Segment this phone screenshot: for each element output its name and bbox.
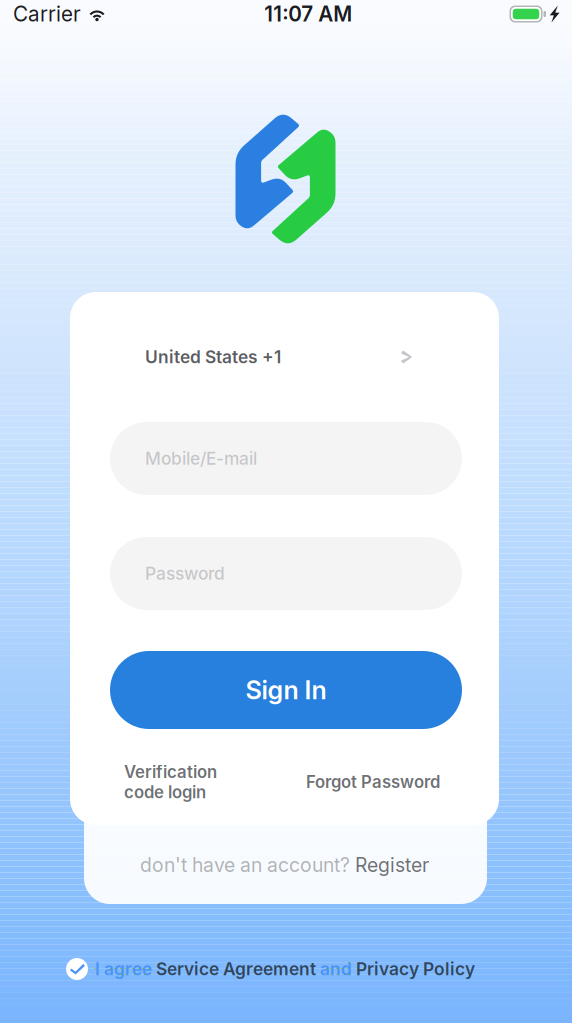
button[interactable]: Sign In	[110, 651, 462, 729]
staticText: United States +1	[145, 346, 281, 367]
staticText: Sign In	[245, 675, 326, 705]
staticText: Password	[145, 563, 225, 584]
staticText: Register	[355, 853, 429, 877]
staticText: 11:07 AM	[264, 1, 352, 26]
staticText: Service Agreement	[156, 958, 316, 979]
button[interactable]: Verification code login	[124, 762, 244, 802]
staticText: Verification code login	[124, 762, 217, 802]
staticText: Forgot Password	[306, 772, 440, 792]
staticText: Privacy Policy	[356, 958, 475, 979]
staticText: Carrier	[13, 1, 81, 26]
button[interactable]: I agree	[66, 956, 475, 982]
staticText: don't have an account?	[140, 853, 355, 877]
staticText: I agree	[95, 958, 156, 979]
button[interactable]: Forgot Password	[306, 772, 440, 792]
button[interactable]: don't have an account?	[140, 851, 429, 879]
staticText: Mobile/E-mail	[145, 448, 257, 469]
staticText: and	[316, 958, 356, 979]
button[interactable]: United States +1	[110, 337, 462, 377]
